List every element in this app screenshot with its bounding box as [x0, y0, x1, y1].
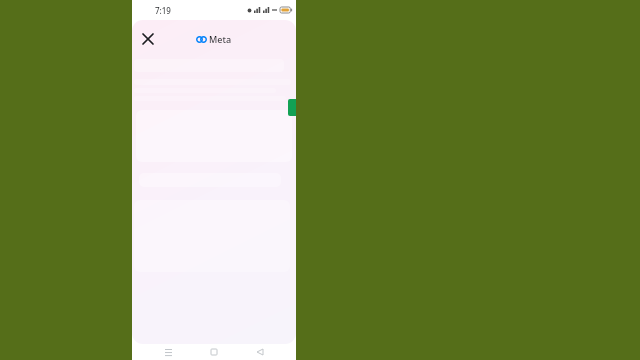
staticText: Meta — [209, 33, 232, 45]
button[interactable]: Close — [136, 27, 160, 51]
button[interactable]: Home — [204, 344, 224, 360]
button[interactable]: Back — [250, 344, 270, 360]
button[interactable]: Recent apps — [158, 344, 178, 360]
button[interactable]: Open side panel — [288, 99, 296, 116]
staticText: 7:19 — [155, 5, 171, 16]
